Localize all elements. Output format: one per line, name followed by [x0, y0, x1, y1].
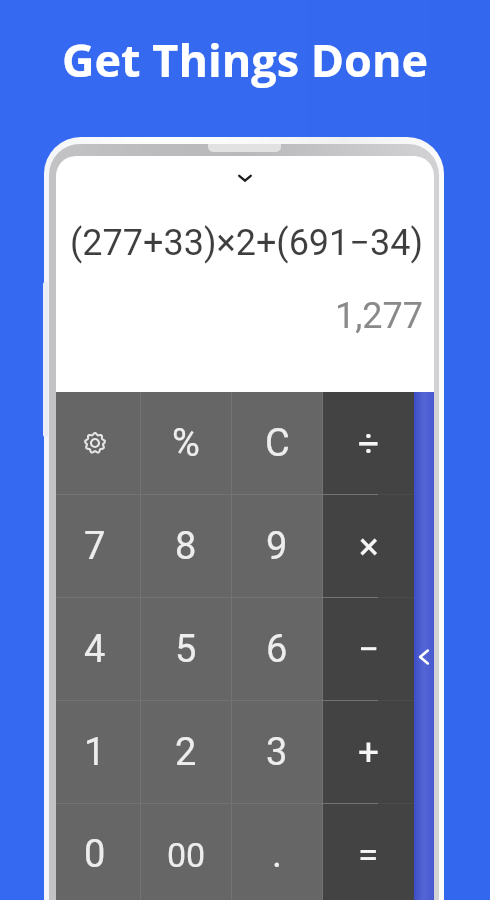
staticText: = — [358, 833, 379, 876]
staticText: . — [272, 832, 283, 877]
staticText: 1 — [84, 730, 106, 775]
staticText: C — [265, 421, 290, 466]
button[interactable]: 6 — [232, 598, 322, 700]
staticText: % — [172, 421, 200, 466]
staticText: 1,277 — [335, 295, 424, 337]
staticText: 6 — [266, 627, 288, 672]
button[interactable]: Show history — [237, 170, 253, 186]
button[interactable]: 5 — [141, 598, 231, 700]
button[interactable]: Settings — [56, 392, 140, 494]
button[interactable]: 4 — [56, 598, 140, 700]
staticText: × — [359, 525, 379, 568]
staticText: (277+33)×2+(691−34) — [70, 222, 423, 264]
staticText: 9 — [266, 524, 288, 569]
button[interactable]: 7 — [56, 495, 140, 597]
staticText: + — [358, 731, 379, 774]
staticText: 3 — [266, 730, 288, 775]
staticText: 0 — [84, 832, 106, 877]
button[interactable]: = — [323, 804, 414, 900]
button[interactable]: 9 — [232, 495, 322, 597]
button[interactable]: 1 — [56, 701, 140, 803]
staticText: Get Things Done — [0, 29, 490, 90]
staticText: 7 — [84, 524, 106, 569]
staticText: ÷ — [358, 422, 380, 465]
button[interactable]: 0 — [56, 804, 140, 900]
button[interactable]: Open side panel — [414, 392, 434, 900]
button[interactable]: . — [232, 804, 322, 900]
button[interactable]: 2 — [141, 701, 231, 803]
staticText: 5 — [175, 627, 197, 672]
staticText: − — [358, 628, 380, 671]
button[interactable]: + — [323, 701, 414, 803]
button[interactable]: % — [141, 392, 231, 494]
button[interactable]: C — [232, 392, 322, 494]
other: Settings — [82, 430, 108, 456]
button[interactable]: 8 — [141, 495, 231, 597]
button[interactable]: 3 — [232, 701, 322, 803]
button[interactable]: ÷ — [323, 392, 414, 494]
staticText: 00 — [167, 835, 206, 875]
staticText: 4 — [84, 627, 106, 672]
button[interactable]: − — [323, 598, 414, 700]
staticText: 8 — [175, 524, 197, 569]
button[interactable]: × — [323, 495, 414, 597]
button[interactable]: 00 — [141, 804, 231, 900]
staticText: 2 — [175, 730, 197, 775]
